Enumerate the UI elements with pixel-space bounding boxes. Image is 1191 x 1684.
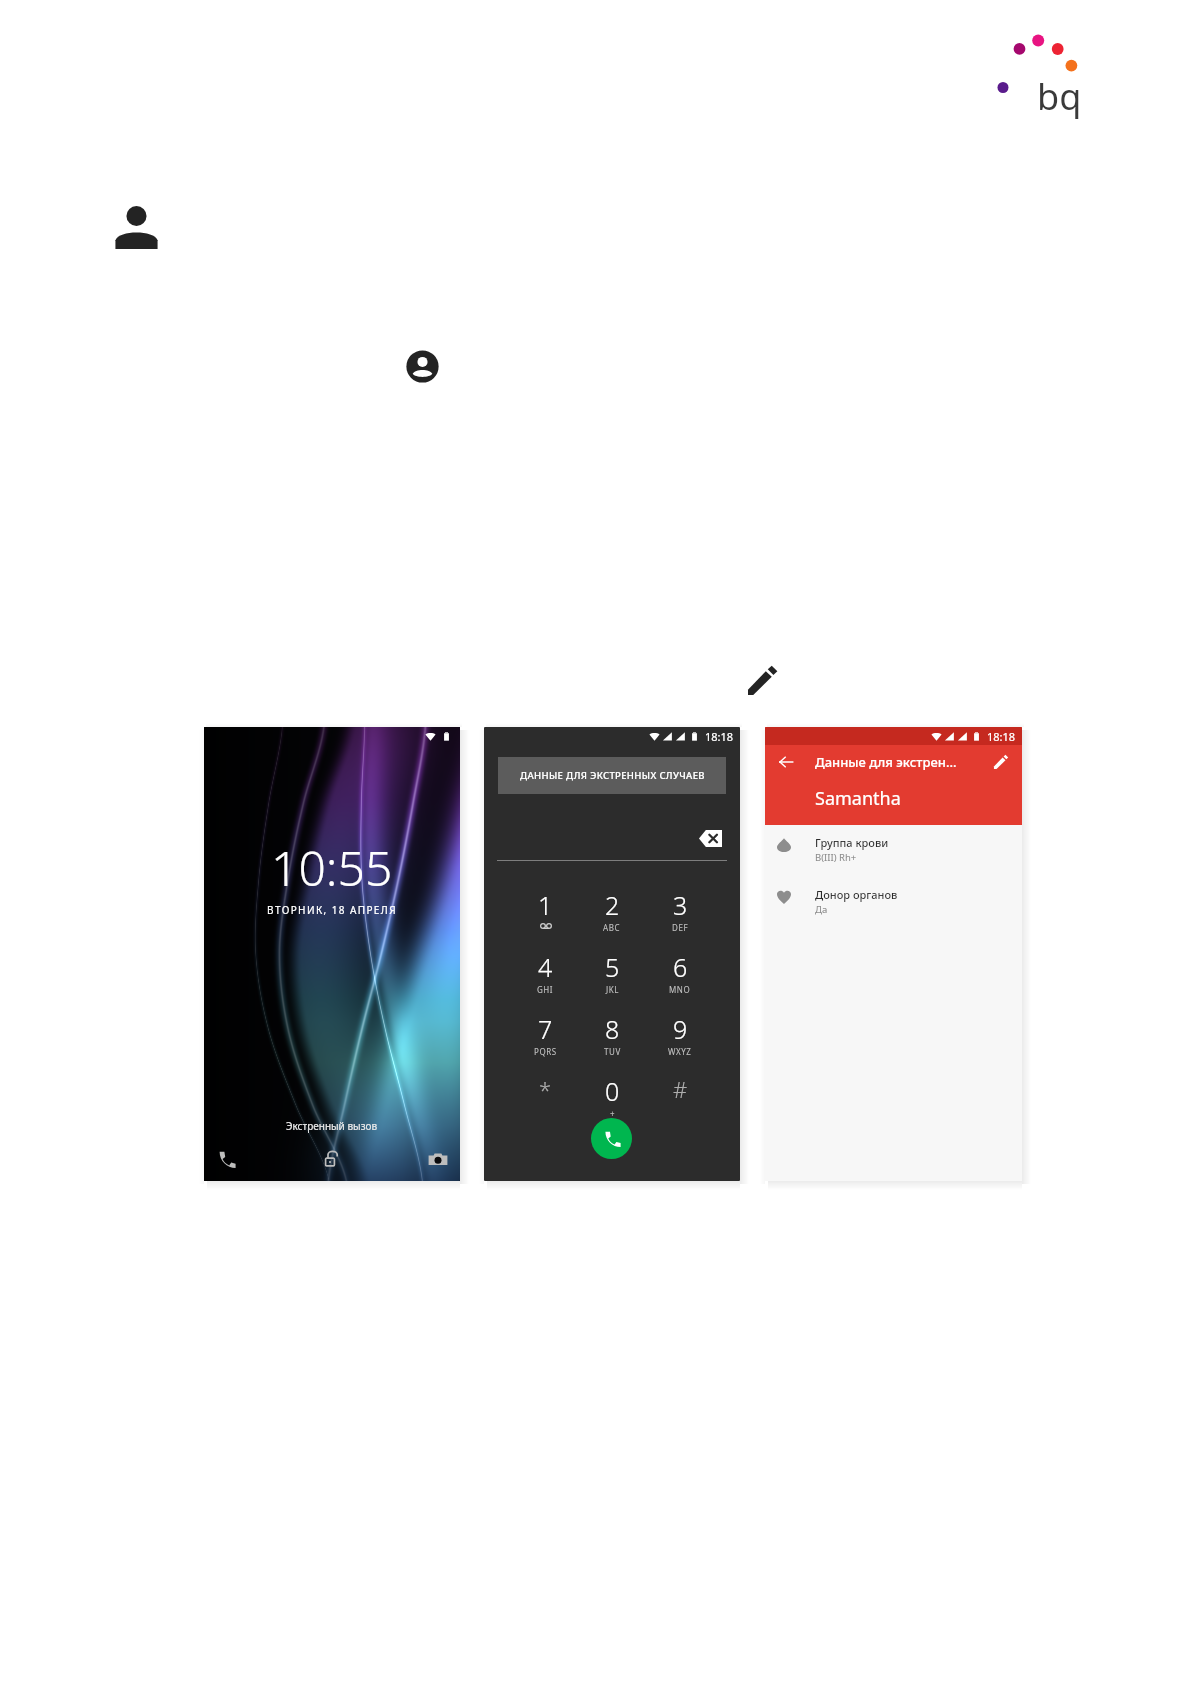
button[interactable]: * [512, 1074, 578, 1130]
staticText: Группа крови [815, 835, 889, 850]
button[interactable]: 2 [579, 888, 645, 944]
staticText: # [673, 1074, 688, 1104]
button[interactable]: Back [778, 754, 794, 770]
staticText: MNO [669, 984, 691, 995]
staticText: JKL [606, 984, 619, 995]
staticText: ABC [603, 922, 621, 933]
staticText: DEF [672, 922, 689, 933]
staticText: 0 [605, 1074, 620, 1108]
button[interactable]: 8 [579, 1012, 645, 1068]
staticText: ВТОРНИК, 18 АПРЕЛЯ [267, 903, 397, 917]
staticText: TUV [604, 1046, 621, 1057]
button[interactable]: Phone [216, 1149, 236, 1169]
staticText: Samantha [815, 786, 901, 811]
staticText: 7 [538, 1012, 553, 1046]
button[interactable]: 4 [512, 950, 578, 1006]
button[interactable]: 9 [647, 1012, 713, 1068]
button[interactable]: Донор органов [777, 887, 1007, 921]
staticText: Донор органов [815, 887, 898, 902]
staticText: bq [1037, 72, 1082, 121]
staticText: 2 [605, 888, 620, 922]
button[interactable]: 7 [512, 1012, 578, 1068]
staticText: 1 [538, 888, 553, 922]
button[interactable]: 5 [579, 950, 645, 1006]
staticText: 6 [673, 950, 688, 984]
button[interactable]: 0 [579, 1074, 645, 1130]
staticText: B(III) Rh+ [815, 851, 857, 864]
button[interactable]: 6 [647, 950, 713, 1006]
button[interactable]: Unlock [322, 1149, 342, 1169]
button[interactable]: # [647, 1074, 713, 1130]
staticText: WXYZ [668, 1046, 692, 1057]
staticText: + [610, 1108, 616, 1119]
button[interactable]: Call [591, 1118, 632, 1159]
staticText: 9 [673, 1012, 688, 1046]
staticText: 10:55 [271, 835, 393, 900]
staticText: ДАННЫЕ ДЛЯ ЭКСТРЕННЫХ СЛУЧАЕВ [520, 769, 705, 782]
button[interactable]: Backspace [699, 830, 722, 847]
button[interactable]: 1 [512, 888, 578, 944]
staticText: Данные для экстрен… [815, 753, 957, 771]
staticText: 5 [605, 950, 620, 984]
button[interactable]: 3 [647, 888, 713, 944]
staticText: 8 [605, 1012, 620, 1046]
button[interactable]: Экстренный вызов [286, 1119, 378, 1133]
staticText: GHI [537, 984, 554, 995]
button[interactable]: Camera [428, 1149, 448, 1169]
staticText: 4 [538, 950, 553, 984]
button[interactable]: Edit [993, 754, 1009, 770]
staticText: * [539, 1074, 552, 1104]
staticText: 18:18 [987, 729, 1016, 744]
staticText: PQRS [534, 1046, 557, 1057]
staticText: 3 [673, 888, 688, 922]
button[interactable]: ДАННЫЕ ДЛЯ ЭКСТРЕННЫХ СЛУЧАЕВ [498, 757, 726, 794]
staticText: 18:18 [705, 729, 734, 744]
button[interactable]: Группа крови [777, 835, 1007, 869]
staticText: Да [815, 903, 828, 916]
